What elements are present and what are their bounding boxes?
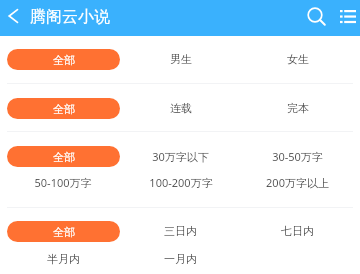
button[interactable]: 全部 <box>4 218 122 244</box>
button[interactable]: 完本 <box>239 95 356 121</box>
button[interactable]: 30-50万字 <box>239 143 356 169</box>
button[interactable]: Menu <box>333 3 360 33</box>
button[interactable]: 全部 <box>4 46 122 72</box>
button[interactable]: 50-100万字 <box>4 169 122 195</box>
button[interactable]: Back <box>0 3 26 29</box>
staticText: 半月内 <box>47 252 80 266</box>
staticText: 100-200万字 <box>149 175 213 190</box>
staticText: 腾阁云小说 <box>30 7 110 27</box>
staticText: 三日内 <box>164 224 197 238</box>
button[interactable]: 女生 <box>239 46 356 72</box>
staticText: 50-100万字 <box>34 175 92 190</box>
staticText: 200万字以上 <box>266 175 329 190</box>
staticText: 30万字以下 <box>152 149 209 164</box>
button[interactable]: 七日内 <box>239 218 356 244</box>
button[interactable]: 半月内 <box>4 246 122 272</box>
staticText: 男生 <box>170 52 192 66</box>
button[interactable]: 全部 <box>4 143 122 169</box>
staticText: 女生 <box>287 52 309 66</box>
button[interactable]: 200万字以上 <box>239 169 356 195</box>
staticText: 全部 <box>53 150 75 164</box>
button[interactable]: 一月内 <box>122 246 239 272</box>
staticText: 连载 <box>170 101 192 115</box>
staticText: 七日内 <box>281 224 314 238</box>
staticText: 全部 <box>53 102 75 116</box>
staticText: 全部 <box>53 53 75 67</box>
button[interactable]: 连载 <box>122 95 239 121</box>
button[interactable]: 100-200万字 <box>122 169 239 195</box>
button[interactable]: Search <box>302 2 332 32</box>
button[interactable]: 男生 <box>122 46 239 72</box>
staticText: 一月内 <box>164 252 197 266</box>
staticText: 完本 <box>287 101 309 115</box>
button[interactable]: 30万字以下 <box>122 143 239 169</box>
staticText: 30-50万字 <box>272 149 323 164</box>
button[interactable]: 三日内 <box>122 218 239 244</box>
staticText: 全部 <box>53 225 75 239</box>
button[interactable]: 全部 <box>4 95 122 121</box>
